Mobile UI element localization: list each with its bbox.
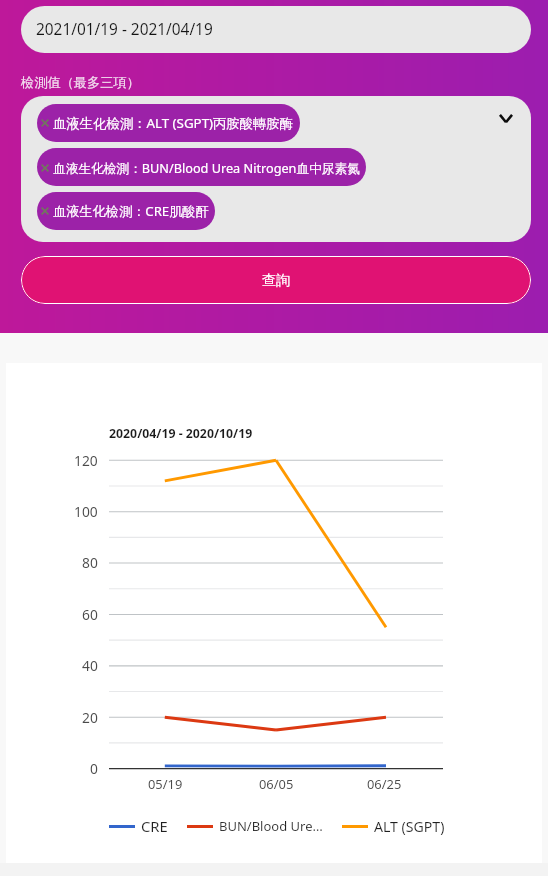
button[interactable]: 2021/01/19 - 2021/04/19 [21,6,531,53]
staticText: 80 [82,553,98,572]
button[interactable]: Remove 血液生化檢測：CRE肌酸酐 [37,192,215,230]
button[interactable]: 查詢 [21,256,531,304]
staticText: 120 [74,451,98,470]
staticText: 40 [82,656,98,675]
staticText: ALT (SGPT) [374,817,445,836]
staticText: 血液生化檢測：CRE肌酸酐 [53,202,209,220]
staticText: 2021/01/19 - 2021/04/19 [36,19,213,40]
button[interactable]: Remove 血液生化檢測：BUN/Blood Urea Nitrogen血中尿… [37,148,366,186]
button[interactable]: Remove 血液生化檢測：ALT (SGPT)丙胺酸轉胺酶 [40,118,50,128]
staticText: 20 [82,708,98,727]
button[interactable]: Remove 血液生化檢測：CRE肌酸酐 [40,206,50,216]
staticText: 查詢 [262,271,291,289]
staticText: 2020/04/19 - 2020/10/19 [109,425,253,442]
staticText: 06/25 [367,775,402,793]
button[interactable]: Expand list [494,106,518,130]
staticText: 血液生化檢測：ALT (SGPT)丙胺酸轉胺酶 [53,114,294,132]
button[interactable]: Remove 血液生化檢測：BUN/Blood Urea Nitrogen血中尿… [40,163,50,173]
button[interactable]: BUN/Blood Ure… [187,815,323,837]
staticText: 06/05 [259,775,294,793]
staticText: 血液生化檢測：BUN/Blood Urea Nitrogen血中尿素氮 [53,159,360,176]
button[interactable]: Remove 血液生化檢測：ALT (SGPT)丙胺酸轉胺酶 [37,104,300,142]
button[interactable]: Remove 血液生化檢測：ALT (SGPT)丙胺酸轉胺酶 [21,96,531,242]
staticText: BUN/Blood Ure… [219,817,323,835]
staticText: 檢測值（最多三項） [21,74,140,91]
button[interactable]: CRE [109,815,168,837]
staticText: 05/19 [148,775,183,793]
staticText: 0 [90,759,98,778]
button[interactable]: ALT (SGPT) [342,815,445,837]
staticText: 60 [82,605,98,624]
staticText: CRE [141,816,168,836]
staticText: 100 [74,502,98,521]
